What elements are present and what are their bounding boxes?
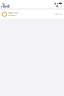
button[interactable]: Search	[56, 5, 58, 8]
staticText: Sign in to iCloud	[8, 14, 17, 16]
staticText: Apple Account	[8, 12, 18, 14]
staticText: 9:41	[2, 2, 5, 4]
staticText: Not Signed In	[54, 13, 62, 15]
button[interactable]: Apple Account	[0, 10, 64, 19]
button[interactable]: Back	[0, 5, 11, 8]
staticText: Back	[3, 5, 10, 8]
button[interactable]: Account	[58, 5, 64, 8]
